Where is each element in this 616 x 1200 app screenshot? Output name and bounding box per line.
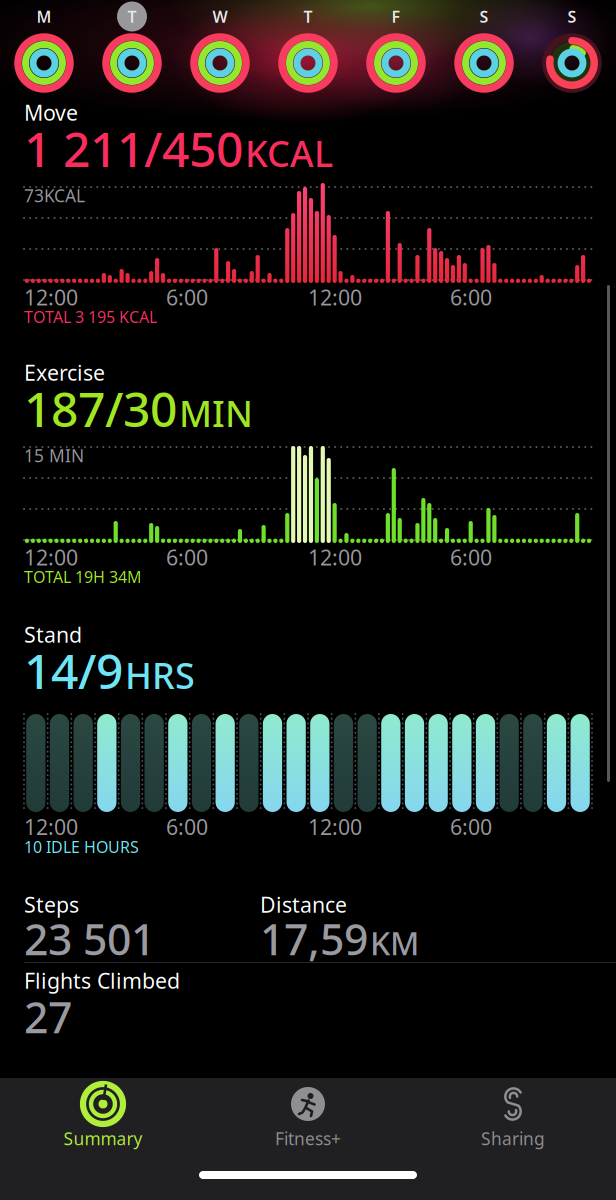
staticText: KCAL	[245, 129, 333, 177]
staticText: 6:00	[450, 543, 492, 571]
staticText: 14/9	[24, 638, 123, 702]
button[interactable]: Sharing	[423, 1084, 603, 1150]
staticText: 73KCAL	[24, 184, 85, 207]
staticText: 12:00	[24, 283, 78, 311]
staticText: 10 IDLE HOURS	[24, 836, 139, 857]
staticText: HRS	[125, 651, 195, 699]
staticText: S	[479, 6, 488, 27]
staticText: Steps	[24, 890, 79, 919]
button[interactable]: M activity rings	[0, 1, 88, 89]
staticText: 15 MIN	[24, 444, 84, 467]
button[interactable]: F activity rings	[352, 1, 440, 89]
button[interactable]: Fitness+	[218, 1084, 398, 1150]
staticText: 6:00	[166, 813, 208, 841]
staticText: Exercise	[24, 358, 105, 387]
staticText: 6:00	[450, 283, 492, 311]
staticText: TOTAL 19H 34M	[24, 566, 142, 587]
staticText: KM	[370, 921, 419, 964]
staticText: 12:00	[308, 283, 362, 311]
button[interactable]: T activity rings	[264, 1, 352, 89]
staticText: 12:00	[24, 813, 78, 841]
staticText: S	[567, 6, 576, 27]
button[interactable]: Summary	[13, 1084, 193, 1150]
staticText: Stand	[24, 620, 82, 649]
button[interactable]: W activity rings	[176, 1, 264, 89]
staticText: 6:00	[166, 543, 208, 571]
staticText: Fitness+	[275, 1127, 341, 1150]
staticText: 187/30	[24, 376, 177, 440]
staticText: 12:00	[308, 813, 362, 841]
staticText: MIN	[179, 389, 253, 437]
staticText: 23 501	[24, 910, 155, 967]
staticText: T	[303, 6, 312, 27]
staticText: 1 211/450	[24, 116, 243, 180]
staticText: 12:00	[308, 543, 362, 571]
staticText: F	[391, 6, 400, 27]
staticText: Distance	[260, 890, 347, 919]
staticText: 27	[24, 988, 72, 1045]
staticText: TOTAL 3 195 KCAL	[24, 306, 157, 327]
staticText: 6:00	[166, 283, 208, 311]
staticText: 6:00	[450, 813, 492, 841]
staticText: M	[36, 6, 51, 27]
staticText: Sharing	[481, 1127, 545, 1150]
staticText: Flights Climbed	[24, 966, 180, 995]
staticText: W	[212, 6, 227, 27]
staticText: Summary	[63, 1127, 142, 1150]
button[interactable]: S activity rings	[528, 1, 616, 89]
staticText: Move	[24, 98, 78, 127]
staticText: T	[127, 6, 136, 27]
staticText: 17,59	[260, 910, 368, 967]
button[interactable]: S activity rings	[440, 1, 528, 89]
button[interactable]: T activity rings	[88, 1, 176, 89]
staticText: 12:00	[24, 543, 78, 571]
